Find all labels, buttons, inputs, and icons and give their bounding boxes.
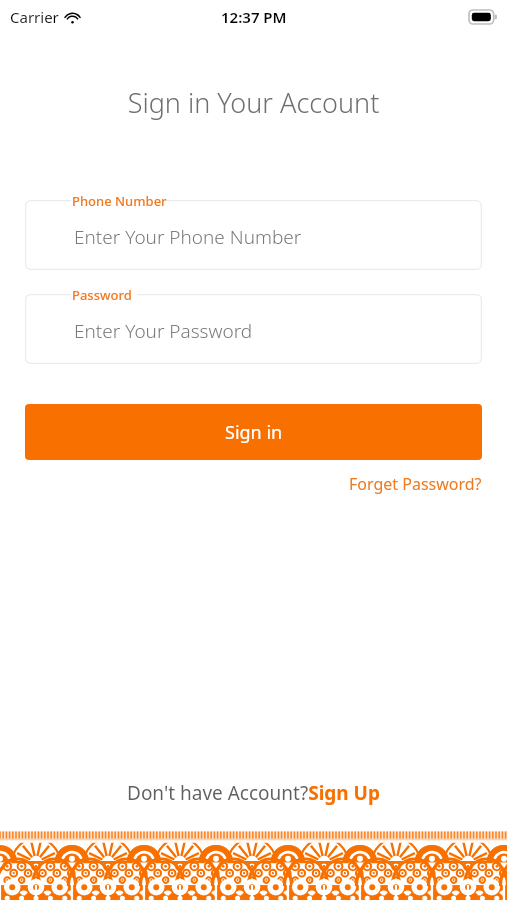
staticText: Password: [72, 286, 132, 304]
button[interactable]: Password: [25, 294, 482, 364]
staticText: Forget Password?: [349, 473, 482, 495]
staticText: Sign in Your Account: [0, 84, 507, 121]
other: Battery: [469, 10, 497, 24]
staticText: Sign in: [225, 420, 283, 445]
button[interactable]: Don't have Account?Sign Up: [121, 774, 386, 812]
staticText: 12:37 PM: [221, 7, 287, 27]
button[interactable]: Sign in: [25, 404, 482, 460]
staticText: Don't have Account?Sign Up: [127, 780, 380, 806]
staticText: Enter Your Phone Number: [74, 224, 302, 250]
button[interactable]: Forget Password?: [324, 468, 507, 500]
staticText: Enter Your Password: [74, 318, 253, 344]
staticText: Phone Number: [72, 192, 167, 210]
button[interactable]: Phone Number: [25, 200, 482, 270]
staticText: Carrier: [10, 7, 59, 27]
